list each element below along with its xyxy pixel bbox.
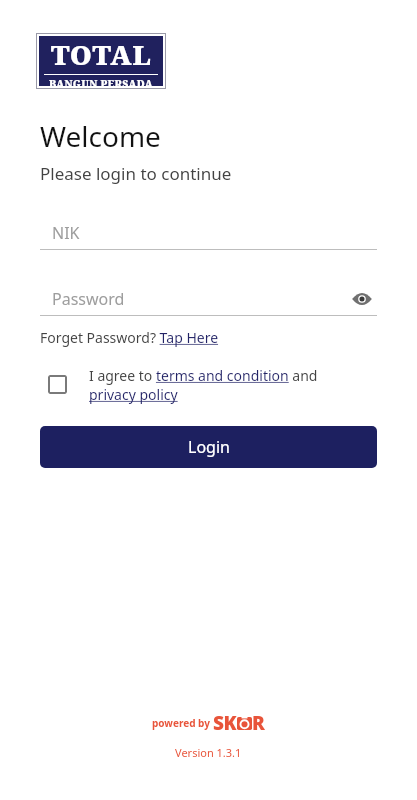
button[interactable]: I agree to terms and condition and priva… <box>89 366 318 404</box>
button[interactable]: Password <box>52 283 347 315</box>
button[interactable]: Login <box>40 426 377 468</box>
button[interactable]: Agree to terms checkbox <box>42 369 72 399</box>
staticText: Password <box>52 288 125 310</box>
staticText: BANGUN PERSADA <box>49 77 153 86</box>
staticText: SK <box>213 710 237 736</box>
staticText: Version 1.3.1 <box>175 745 242 760</box>
staticText: R <box>252 710 265 736</box>
button[interactable]: Show password <box>347 284 377 314</box>
staticText: I agree to terms and condition and priva… <box>89 366 318 404</box>
staticText: TOTAL <box>51 36 152 73</box>
button[interactable]: NIK <box>40 217 377 250</box>
staticText: Please login to continue <box>40 162 232 185</box>
staticText: Forget Password? Tap Here <box>40 328 219 347</box>
staticText: powered by <box>152 716 213 730</box>
staticText: Login <box>188 436 230 458</box>
button[interactable]: Forget Password? Tap Here <box>40 328 219 347</box>
staticText: NIK <box>52 222 80 244</box>
staticText: Welcome <box>40 117 161 155</box>
